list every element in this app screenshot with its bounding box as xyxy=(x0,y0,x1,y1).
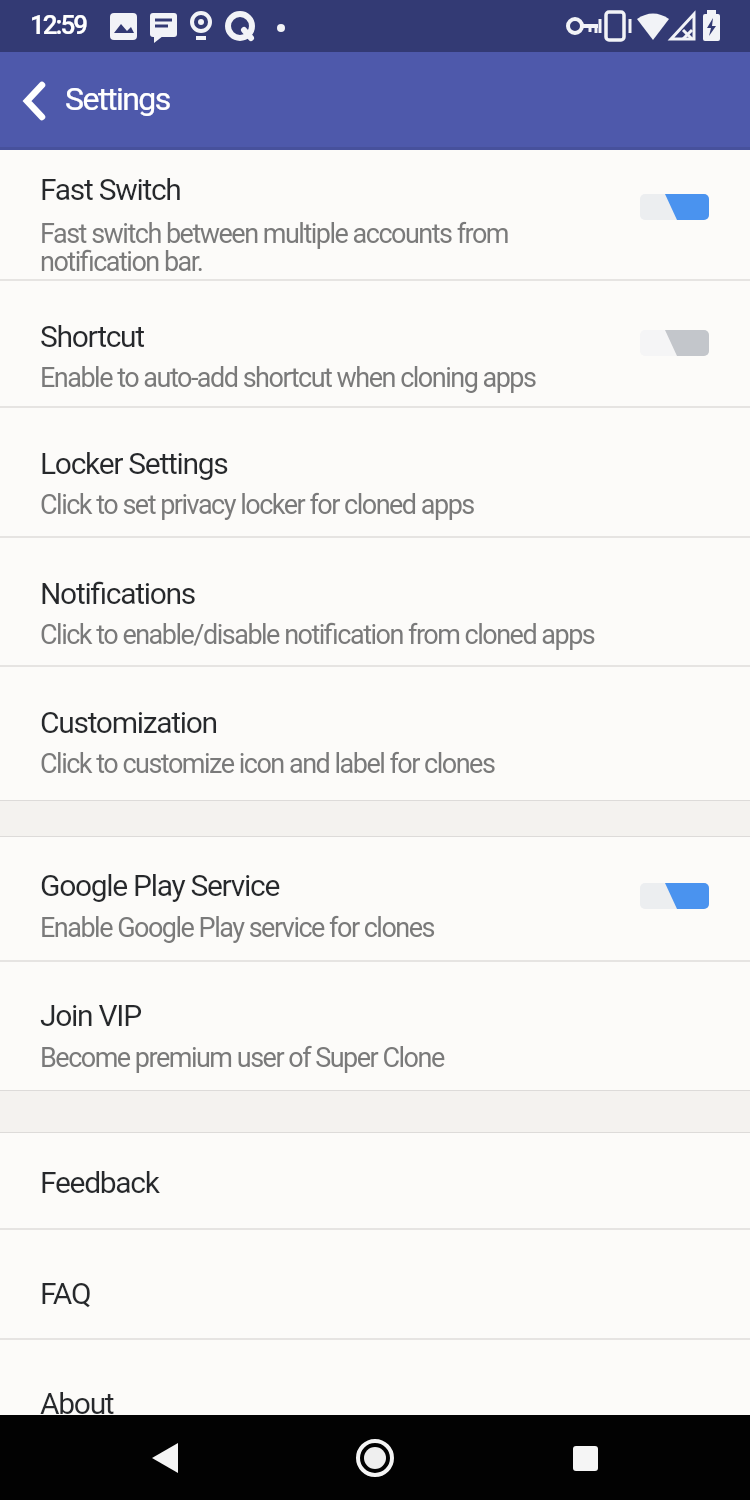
staticText: Settings xyxy=(65,80,170,118)
button[interactable]: Locker Settings xyxy=(0,408,750,536)
button[interactable]: About xyxy=(0,1340,750,1415)
button[interactable] xyxy=(550,1423,620,1493)
button[interactable]: FAQ xyxy=(0,1230,750,1338)
button[interactable]: Google Play Service xyxy=(0,837,750,960)
staticText: Enable Google Play service for clones xyxy=(40,912,434,944)
staticText: Notifications xyxy=(40,576,195,611)
button[interactable]: Join VIP xyxy=(0,962,750,1090)
button[interactable] xyxy=(0,52,60,150)
staticText: Locker Settings xyxy=(40,446,228,481)
staticText: Fast switch between multiple accounts fr… xyxy=(40,218,509,250)
staticText: Feedback xyxy=(40,1165,159,1200)
button[interactable] xyxy=(640,883,709,909)
staticText: Join VIP xyxy=(40,998,141,1033)
staticText: FAQ xyxy=(40,1276,91,1311)
staticText: Customization xyxy=(40,705,217,740)
button[interactable]: Customization xyxy=(0,667,750,800)
staticText: Click to customize icon and label for cl… xyxy=(40,748,495,780)
staticText: Shortcut xyxy=(40,319,144,354)
staticText: 12:59 xyxy=(30,10,87,40)
button[interactable]: Notifications xyxy=(0,538,750,665)
staticText: notification bar. xyxy=(40,246,203,278)
button[interactable]: Fast Switch xyxy=(0,150,750,279)
button[interactable] xyxy=(340,1423,410,1493)
staticText: Click to set privacy locker for cloned a… xyxy=(40,489,474,521)
staticText: Become premium user of Super Clone xyxy=(40,1042,444,1074)
button[interactable] xyxy=(130,1423,200,1493)
staticText: About xyxy=(40,1386,114,1415)
button[interactable]: Feedback xyxy=(0,1133,750,1228)
staticText: Click to enable/disable notification fro… xyxy=(40,619,595,651)
staticText: Google Play Service xyxy=(40,868,279,903)
staticText: Enable to auto-add shortcut when cloning… xyxy=(40,362,536,394)
button[interactable]: Shortcut xyxy=(0,281,750,406)
button[interactable] xyxy=(640,194,709,220)
button[interactable] xyxy=(640,330,709,356)
staticText: Fast Switch xyxy=(40,172,181,207)
